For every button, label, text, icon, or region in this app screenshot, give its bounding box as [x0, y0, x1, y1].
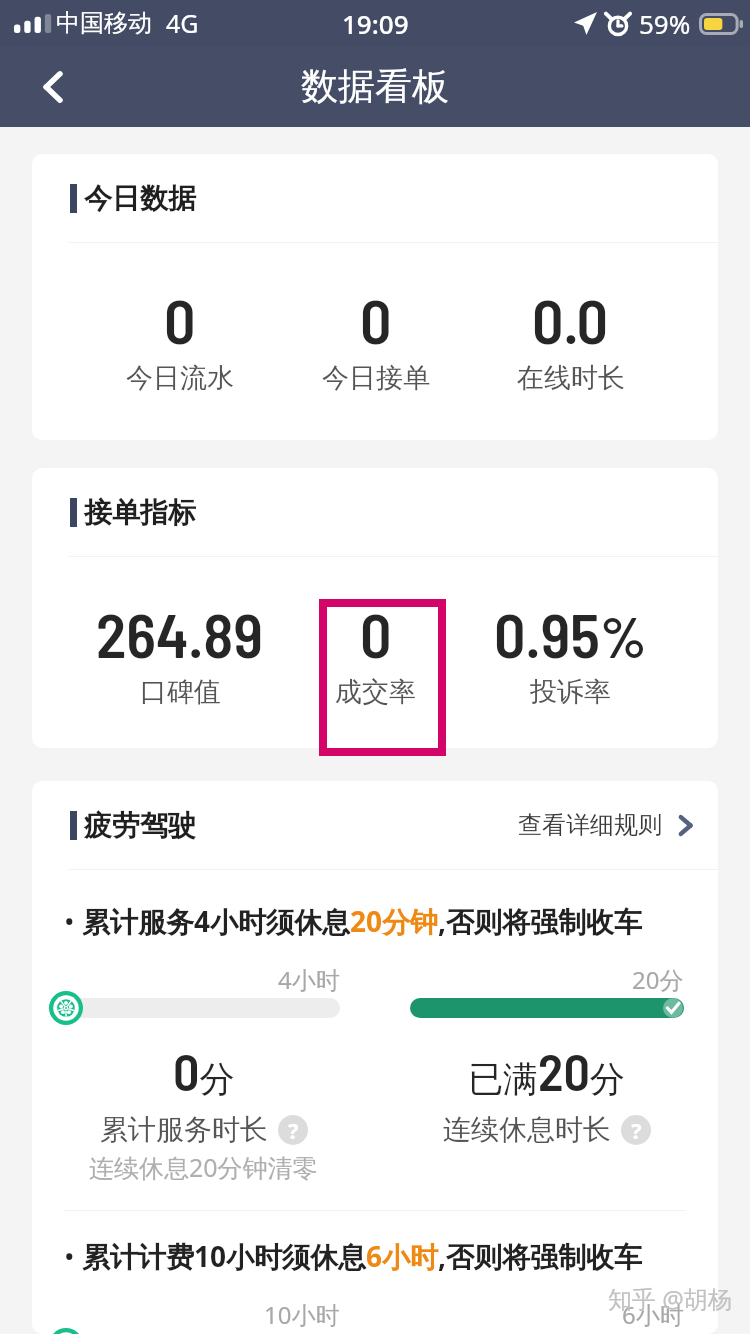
button[interactable]: 0	[82, 282, 278, 390]
staticText: 19:09	[342, 6, 409, 41]
button[interactable]: Help	[621, 1115, 651, 1145]
staticText: 疲劳驾驶	[84, 808, 196, 843]
button[interactable]: 查看详细规则	[518, 810, 696, 840]
button[interactable]: 0.95%	[473, 596, 668, 704]
staticText: 今日流水	[126, 361, 234, 395]
staticText: 0	[360, 282, 392, 356]
staticText: 0	[164, 282, 196, 356]
staticText: 在线时长	[517, 361, 625, 395]
staticText: 口碑值	[140, 675, 221, 709]
staticText: 0分	[173, 1039, 235, 1101]
staticText: 6小时	[622, 1298, 684, 1329]
staticText: 累计计费10小时须休息6小时,否则将强制收车	[82, 1237, 643, 1275]
staticText: ?	[631, 1115, 642, 1145]
staticText: 数据看板	[301, 63, 449, 110]
staticText: •	[64, 1237, 75, 1275]
staticText: 4G	[166, 6, 199, 40]
button[interactable]: 264.89	[82, 596, 278, 704]
button[interactable]: 成交率 highlighted	[319, 599, 446, 756]
staticText: 264.89	[96, 596, 264, 670]
staticText: 0.0	[532, 282, 609, 356]
staticText: 中国移动	[56, 8, 152, 38]
button[interactable]: 0.0	[473, 282, 668, 390]
staticText: 已满20分	[468, 1039, 625, 1101]
button[interactable]: Back	[26, 59, 82, 115]
staticText: ?	[288, 1115, 299, 1145]
staticText: 20分	[632, 963, 684, 996]
staticText: 0.95%	[494, 596, 647, 670]
staticText: 59%	[639, 6, 691, 41]
staticText: 接单指标	[84, 495, 196, 530]
button[interactable]: Help	[278, 1115, 308, 1145]
button[interactable]: 0	[278, 282, 473, 390]
staticText: 知乎 @胡杨	[608, 1282, 732, 1315]
staticText: 累计服务4小时须休息20分钟,否则将强制收车	[82, 902, 643, 940]
staticText: 0	[360, 596, 392, 670]
staticText: •	[64, 902, 75, 940]
staticText: 4小时	[278, 963, 340, 996]
staticText: 今日数据	[84, 181, 196, 216]
staticText: 查看详细规则	[518, 810, 662, 840]
staticText: 连续休息20分钟清零	[89, 1150, 318, 1184]
staticText: 10小时	[264, 1298, 340, 1329]
staticText: 今日接单	[322, 361, 430, 395]
staticText: 投诉率	[530, 675, 611, 709]
staticText: 连续休息时长	[443, 1112, 611, 1147]
staticText: 成交率	[335, 675, 416, 709]
staticText: 累计服务时长	[100, 1112, 268, 1147]
button[interactable]: 0	[278, 596, 473, 704]
